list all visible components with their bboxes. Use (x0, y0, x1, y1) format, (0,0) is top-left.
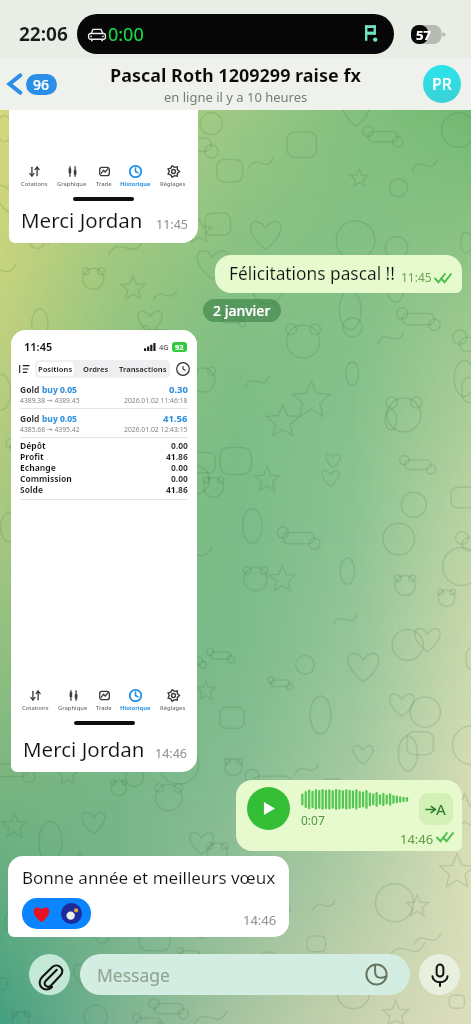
staticText: 92 (175, 342, 184, 352)
button[interactable]: Félicitations pascal !! (215, 255, 462, 293)
staticText: 96 (33, 75, 50, 94)
button[interactable]: Cotations (21, 165, 48, 188)
staticText: PR (432, 73, 452, 95)
staticText: buy 0.05 (42, 384, 77, 396)
button[interactable]: Transcribe voice message (419, 793, 453, 825)
staticText: Positions (38, 364, 73, 374)
staticText: Trade (96, 704, 112, 712)
staticText: Solde (20, 484, 43, 495)
staticText: 2026.01.02 12:43:15 (124, 425, 188, 434)
staticText: 11:45 (24, 339, 53, 354)
staticText: 14:46 (400, 830, 434, 848)
staticText: 41.56 (163, 412, 188, 425)
staticText: Cotations (21, 180, 48, 188)
staticText: Cotations (22, 704, 49, 712)
button[interactable]: Trade (96, 165, 112, 188)
button[interactable]: Historique (120, 689, 151, 712)
button[interactable]: Play voice message (247, 787, 290, 830)
button[interactable]: Trade (96, 689, 112, 712)
button[interactable]: Profile picture (423, 65, 461, 103)
button[interactable]: Attach file (29, 954, 70, 995)
staticText: Ordres (83, 364, 109, 374)
staticText: Historique (120, 180, 151, 188)
button[interactable]: Reactions (22, 898, 91, 929)
button[interactable]: Graphique (58, 689, 88, 712)
staticText: 22:06 (19, 21, 68, 47)
staticText: Bonne année et meilleurs vœux (22, 866, 276, 889)
staticText: 4385.68 → 4395.42 (20, 425, 80, 434)
staticText: Transactions (119, 364, 167, 374)
staticText: A (436, 799, 446, 819)
staticText: 4G (159, 342, 169, 352)
button[interactable]: Message (80, 954, 410, 995)
button[interactable]: Back (0, 66, 63, 102)
staticText: 11:45 (401, 269, 432, 285)
staticText: Trade (96, 180, 112, 188)
staticText: Historique (120, 704, 151, 712)
staticText: 14:46 (155, 745, 187, 762)
staticText: 0.30 (169, 383, 188, 396)
staticText: 41.86 (166, 484, 188, 495)
staticText: Commission (20, 473, 72, 484)
staticText: 0.00 (171, 473, 188, 484)
staticText: 0:07 (301, 812, 325, 828)
staticText: Dépôt (20, 440, 46, 451)
button[interactable]: Graphique (57, 165, 87, 188)
button[interactable]: Bonne année et meilleurs vœux (8, 856, 289, 937)
button[interactable]: 11:45 (11, 330, 197, 772)
staticText: Graphique (57, 180, 87, 188)
staticText: Gold (20, 413, 42, 425)
staticText: Graphique (58, 704, 88, 712)
staticText: en ligne il y a 10 heures (164, 88, 308, 106)
button[interactable]: Réglages (160, 165, 186, 188)
staticText: Merci Jordan (21, 206, 143, 234)
staticText: 41.86 (166, 451, 188, 462)
staticText: 57 (416, 26, 431, 44)
staticText: Gold (20, 384, 42, 396)
staticText: Profit (20, 451, 44, 462)
button[interactable]: Play voice message (236, 780, 462, 851)
staticText: Réglages (160, 704, 186, 712)
staticText: 2 janvier (213, 301, 271, 320)
button[interactable]: Record voice message (419, 954, 460, 995)
staticText: Pascal Roth 1209299 raise fx (110, 63, 361, 88)
button[interactable]: Cotations (9, 110, 198, 243)
button[interactable]: Cotations (22, 689, 49, 712)
staticText: 0.00 (171, 462, 188, 473)
staticText: Merci Jordan (23, 735, 145, 763)
staticText: 11:45 (156, 216, 188, 233)
staticText: 0:00 (108, 22, 144, 47)
staticText: 14:46 (243, 911, 277, 929)
staticText: Félicitations pascal !! (229, 262, 395, 286)
staticText: 4389.38 → 4389.45 (20, 396, 80, 405)
staticText: buy 0.05 (42, 413, 77, 425)
staticText: Echange (20, 462, 56, 473)
staticText: Message (97, 963, 170, 987)
staticText: Réglages (160, 180, 186, 188)
staticText: 0.00 (171, 440, 188, 451)
button[interactable]: Historique (120, 165, 151, 188)
staticText: 2026.01.02 11:46:18 (124, 396, 188, 405)
button[interactable]: Réglages (160, 689, 186, 712)
